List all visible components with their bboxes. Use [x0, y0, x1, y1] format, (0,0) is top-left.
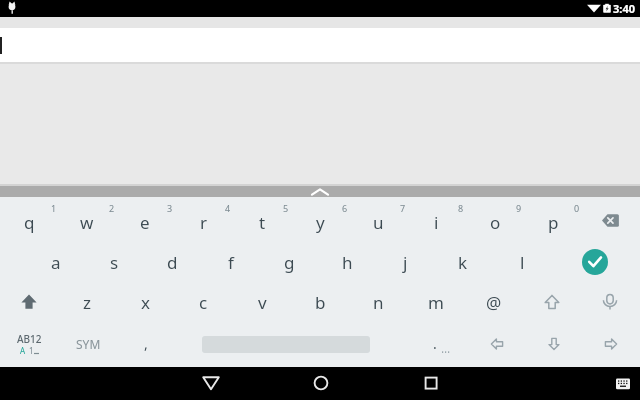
button[interactable] — [300, 369, 342, 398]
staticText: u — [373, 211, 384, 234]
button[interactable] — [0, 28, 640, 62]
button[interactable] — [174, 282, 232, 323]
staticText: @ — [486, 291, 502, 314]
staticText: g — [284, 251, 295, 274]
staticText: A — [20, 345, 26, 356]
staticText: e — [140, 211, 150, 234]
button[interactable] — [260, 241, 318, 282]
button[interactable] — [465, 323, 523, 364]
button[interactable] — [0, 282, 58, 323]
staticText: x — [141, 291, 150, 314]
button[interactable] — [608, 369, 638, 398]
button[interactable] — [0, 186, 640, 197]
button[interactable] — [376, 241, 434, 282]
button[interactable] — [85, 241, 143, 282]
staticText: z — [83, 291, 91, 314]
staticText: w — [80, 211, 94, 234]
staticText: c — [199, 291, 208, 314]
staticText: k — [458, 251, 468, 274]
button[interactable] — [143, 241, 201, 282]
button[interactable] — [291, 200, 349, 241]
button[interactable] — [581, 323, 639, 364]
button[interactable] — [434, 241, 492, 282]
staticText: o — [490, 211, 501, 234]
button[interactable] — [407, 200, 465, 241]
staticText: q — [24, 211, 35, 234]
button[interactable] — [190, 369, 232, 398]
button[interactable] — [116, 282, 174, 323]
staticText: , — [144, 334, 148, 353]
button[interactable] — [406, 323, 464, 364]
button[interactable] — [0, 323, 58, 364]
staticText: b — [315, 291, 326, 314]
staticText: 0 — [574, 202, 580, 214]
button[interactable] — [523, 323, 581, 364]
staticText: d — [167, 251, 178, 274]
staticText: i — [434, 211, 439, 234]
button[interactable] — [117, 323, 175, 364]
button[interactable] — [202, 241, 260, 282]
button[interactable] — [58, 282, 116, 323]
button[interactable] — [233, 282, 291, 323]
button[interactable] — [582, 249, 608, 275]
button[interactable] — [581, 282, 639, 323]
button[interactable] — [465, 200, 523, 241]
staticText: 3:40 — [613, 1, 635, 16]
button[interactable] — [291, 282, 349, 323]
button[interactable] — [407, 282, 465, 323]
staticText: SYM — [76, 336, 101, 352]
button[interactable] — [523, 282, 581, 323]
staticText: h — [342, 251, 353, 274]
staticText: 1 — [29, 345, 34, 356]
button[interactable] — [349, 200, 407, 241]
button[interactable] — [175, 200, 233, 241]
button[interactable] — [233, 200, 291, 241]
staticText: 2 — [109, 202, 115, 214]
staticText: 1 — [51, 202, 57, 214]
staticText: j — [403, 251, 408, 274]
button[interactable] — [524, 200, 582, 241]
button[interactable] — [465, 282, 523, 323]
staticText: 3 — [167, 202, 173, 214]
button[interactable] — [318, 241, 376, 282]
staticText: l — [520, 251, 525, 274]
button[interactable] — [58, 323, 116, 364]
staticText: s — [110, 251, 119, 274]
staticText: t — [259, 211, 266, 234]
button[interactable] — [116, 200, 174, 241]
staticText: 9 — [516, 202, 522, 214]
staticText: m — [428, 291, 444, 314]
staticText: AB12 — [17, 332, 42, 346]
staticText: f — [228, 251, 234, 274]
staticText: r — [200, 211, 208, 234]
button[interactable] — [570, 200, 640, 241]
staticText: y — [316, 211, 325, 234]
button[interactable] — [58, 200, 116, 241]
staticText: p — [548, 211, 559, 234]
button[interactable] — [0, 200, 58, 241]
staticText: 6 — [342, 202, 348, 214]
staticText: 4 — [225, 202, 231, 214]
staticText: . — [433, 334, 437, 353]
staticText: a — [51, 251, 61, 274]
staticText: 5 — [283, 202, 289, 214]
button[interactable] — [349, 282, 407, 323]
button[interactable] — [27, 241, 85, 282]
button[interactable] — [410, 369, 452, 398]
button[interactable] — [493, 241, 551, 282]
staticText: 7 — [400, 202, 406, 214]
staticText: n — [373, 291, 384, 314]
staticText: v — [258, 291, 267, 314]
staticText: 8 — [458, 202, 464, 214]
